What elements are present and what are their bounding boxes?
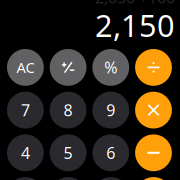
button[interactable]: 5: [50, 134, 86, 171]
staticText: 2,050 +100: [95, 0, 175, 8]
button[interactable]: 1: [7, 177, 44, 180]
button[interactable]: AC: [7, 49, 44, 86]
button[interactable]: Add: [135, 177, 172, 180]
staticText: %: [104, 57, 117, 78]
button[interactable]: 6: [92, 134, 129, 171]
staticText: AC: [16, 58, 34, 77]
button[interactable]: 8: [50, 92, 86, 128]
button[interactable]: 7: [7, 92, 44, 128]
button[interactable]: 3: [92, 177, 129, 180]
button[interactable]: 9: [92, 92, 129, 128]
button[interactable]: 2: [50, 177, 86, 180]
staticText: 5: [64, 142, 73, 163]
staticText: 7: [21, 99, 30, 121]
button[interactable]: %: [92, 49, 129, 86]
button[interactable]: Plus or minus: [50, 49, 86, 86]
button[interactable]: Subtract: [135, 134, 172, 171]
staticText: 4: [21, 142, 30, 163]
staticText: 2,150: [95, 5, 175, 45]
staticText: 9: [106, 99, 115, 121]
button[interactable]: Divide: [135, 49, 172, 86]
button[interactable]: Multiply: [135, 92, 172, 128]
button[interactable]: 4: [7, 134, 44, 171]
staticText: 6: [106, 142, 115, 163]
staticText: 8: [64, 99, 73, 121]
